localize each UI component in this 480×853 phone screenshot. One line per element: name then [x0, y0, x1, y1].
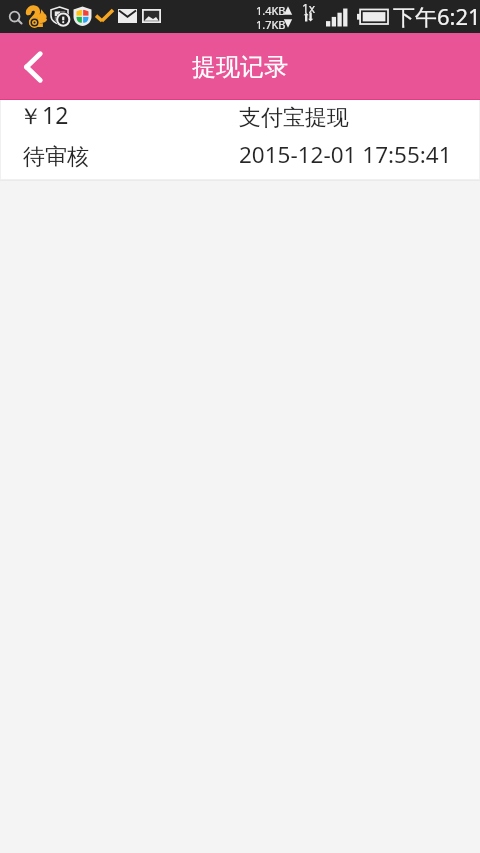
button[interactable]: Back: [0, 33, 62, 100]
button[interactable]: ￥12: [1, 100, 479, 179]
staticText: 1.4KB: [256, 3, 286, 18]
staticText: 下午6:21: [393, 1, 480, 31]
staticText: 1.7KB: [256, 17, 286, 32]
staticText: 2015-12-01 17:55:41: [239, 139, 452, 170]
staticText: ￥12: [19, 99, 69, 130]
staticText: 提现记录: [192, 52, 288, 82]
staticText: 1x: [302, 0, 316, 16]
staticText: 支付宝提现: [239, 104, 349, 132]
staticText: 待审核: [23, 143, 89, 171]
